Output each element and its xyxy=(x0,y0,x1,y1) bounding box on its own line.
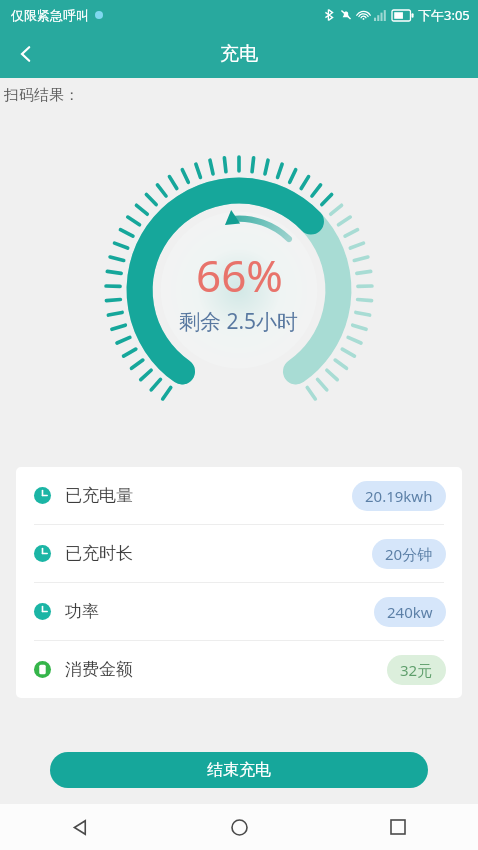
staticText: 32元 xyxy=(400,660,433,680)
staticText: 已充电量 xyxy=(65,485,133,506)
button[interactable]: 消费金额 xyxy=(16,641,462,698)
button[interactable]: 已充时长 xyxy=(16,525,462,582)
staticText: 20.19kwh xyxy=(365,486,433,506)
staticText: 已充时长 xyxy=(65,543,133,564)
staticText: 下午3:05 xyxy=(418,6,470,24)
staticText: 仅限紧急呼叫 xyxy=(11,7,89,23)
staticText: 充电 xyxy=(220,42,258,66)
button[interactable]: 结束充电 xyxy=(50,752,428,788)
staticText: 66% xyxy=(196,245,283,305)
staticText: 剩余 2.5小时 xyxy=(179,307,299,336)
staticText: 240kw xyxy=(387,602,433,622)
button[interactable]: 已充电量 xyxy=(16,467,462,524)
staticText: 消费金额 xyxy=(65,659,133,680)
button[interactable]: Back xyxy=(0,30,52,78)
button[interactable]: Back xyxy=(52,804,108,850)
button[interactable]: Home xyxy=(211,804,267,850)
staticText: 功率 xyxy=(65,601,99,622)
staticText: 扫码结果： xyxy=(4,86,79,105)
staticText: 结束充电 xyxy=(207,760,271,780)
staticText: 20分钟 xyxy=(385,544,433,564)
button[interactable]: Recent apps xyxy=(370,804,426,850)
button[interactable]: 功率 xyxy=(16,583,462,640)
